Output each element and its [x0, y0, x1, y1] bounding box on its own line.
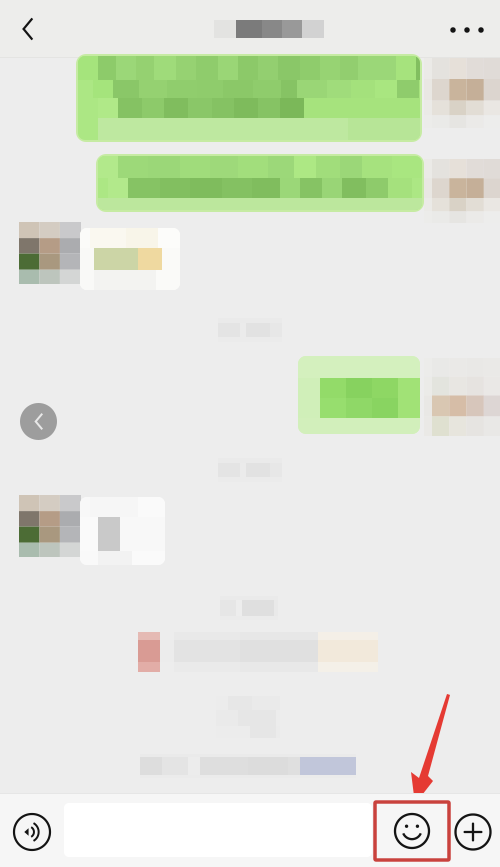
button[interactable]: Back: [5, 4, 51, 54]
button[interactable]: More: [437, 5, 497, 55]
button[interactable]: Emoji: [375, 802, 449, 860]
button[interactable]: More options: [451, 805, 495, 859]
button[interactable]: Voice message: [7, 805, 57, 859]
button[interactable]: Previous messages: [20, 403, 57, 440]
